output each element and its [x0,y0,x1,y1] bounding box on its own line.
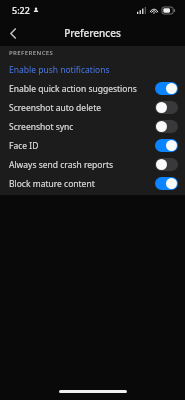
staticText: 5:22 [12,4,30,16]
staticText: PREFERENCES [9,49,54,57]
staticText: Preferences [64,26,121,40]
button[interactable]: Off [155,101,178,114]
button[interactable]: On [155,139,178,152]
button[interactable]: Block mature content [0,174,185,193]
button[interactable]: Off [155,120,178,133]
staticText: Enable quick action suggestions [9,83,155,95]
button[interactable]: Face ID [0,136,185,155]
button[interactable]: On [155,177,178,190]
button[interactable]: Always send crash reports [0,155,185,174]
button[interactable]: Back [0,20,26,46]
button[interactable]: On [155,82,178,95]
staticText: Screenshot auto delete [9,102,155,114]
button[interactable]: Enable push notifications [0,60,185,79]
button[interactable]: Screenshot auto delete [0,98,185,117]
staticText: Block mature content [9,178,155,190]
staticText: Enable push notifications [9,64,110,76]
button[interactable]: Off [155,158,178,171]
staticText: Face ID [9,140,155,152]
staticText: Always send crash reports [9,159,155,171]
button[interactable]: Screenshot sync [0,117,185,136]
button[interactable]: Enable quick action suggestions [0,79,185,98]
staticText: Screenshot sync [9,121,155,133]
